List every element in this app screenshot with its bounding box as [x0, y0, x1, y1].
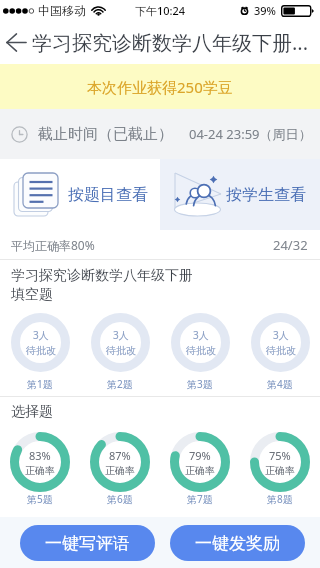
staticText: 待批改 — [266, 344, 296, 357]
button[interactable]: 按学生查看 — [160, 159, 320, 230]
staticText: 第3题 — [187, 377, 213, 391]
button[interactable]: 一键写评语 — [20, 525, 155, 561]
button[interactable]: 一键发奖励 — [170, 525, 305, 561]
staticText: 按题目查看 — [68, 185, 148, 205]
button[interactable]: Back — [0, 20, 32, 64]
staticText: 平均正确率80% — [11, 237, 95, 253]
button[interactable]: 3人 — [0, 313, 80, 391]
button[interactable]: 83% — [0, 432, 80, 506]
staticText: 一键写评语 — [45, 533, 130, 554]
staticText: 第6题 — [107, 492, 133, 506]
staticText: 学习探究诊断数学八年级下册... — [32, 29, 309, 56]
staticText: 按学生查看 — [226, 185, 306, 205]
staticText: 3人 — [193, 328, 209, 342]
button[interactable]: 79% — [160, 432, 240, 506]
staticText: 待批改 — [26, 344, 56, 357]
staticText: 第4题 — [267, 377, 293, 391]
staticText: 正确率 — [105, 464, 135, 477]
staticText: 第7题 — [187, 492, 213, 506]
staticText: 第8题 — [267, 492, 293, 506]
staticText: 选择题 — [11, 403, 53, 421]
staticText: 一键发奖励 — [195, 533, 280, 554]
staticText: 3人 — [33, 328, 49, 342]
staticText: 第5题 — [27, 492, 53, 506]
staticText: 83% — [29, 448, 51, 463]
button[interactable]: 75% — [240, 432, 320, 506]
button[interactable]: 按题目查看 — [0, 159, 160, 230]
staticText: 学习探究诊断数学八年级下册 — [11, 267, 193, 285]
button[interactable]: 87% — [80, 432, 160, 506]
staticText: 下午10:24 — [135, 3, 186, 18]
button[interactable]: 3人 — [160, 313, 240, 391]
staticText: 本次作业获得250学豆 — [87, 77, 233, 97]
button[interactable]: 3人 — [240, 313, 320, 391]
staticText: 正确率 — [185, 464, 215, 477]
staticText: 3人 — [113, 328, 129, 342]
staticText: 待批改 — [186, 344, 216, 357]
staticText: 87% — [109, 448, 131, 463]
staticText: 第2题 — [107, 377, 133, 391]
staticText: 24/32 — [273, 236, 308, 254]
staticText: 第1题 — [27, 377, 53, 391]
staticText: 填空题 — [11, 286, 53, 304]
button[interactable]: 3人 — [80, 313, 160, 391]
staticText: 75% — [269, 448, 291, 463]
staticText: 04-24 23:59（周日） — [189, 125, 312, 143]
staticText: 待批改 — [106, 344, 136, 357]
staticText: 中国移动 — [38, 3, 86, 18]
staticText: 正确率 — [25, 464, 55, 477]
staticText: 正确率 — [265, 464, 295, 477]
staticText: 截止时间（已截止） — [38, 125, 173, 144]
staticText: 39% — [254, 3, 276, 18]
staticText: 79% — [189, 448, 211, 463]
staticText: 3人 — [273, 328, 289, 342]
